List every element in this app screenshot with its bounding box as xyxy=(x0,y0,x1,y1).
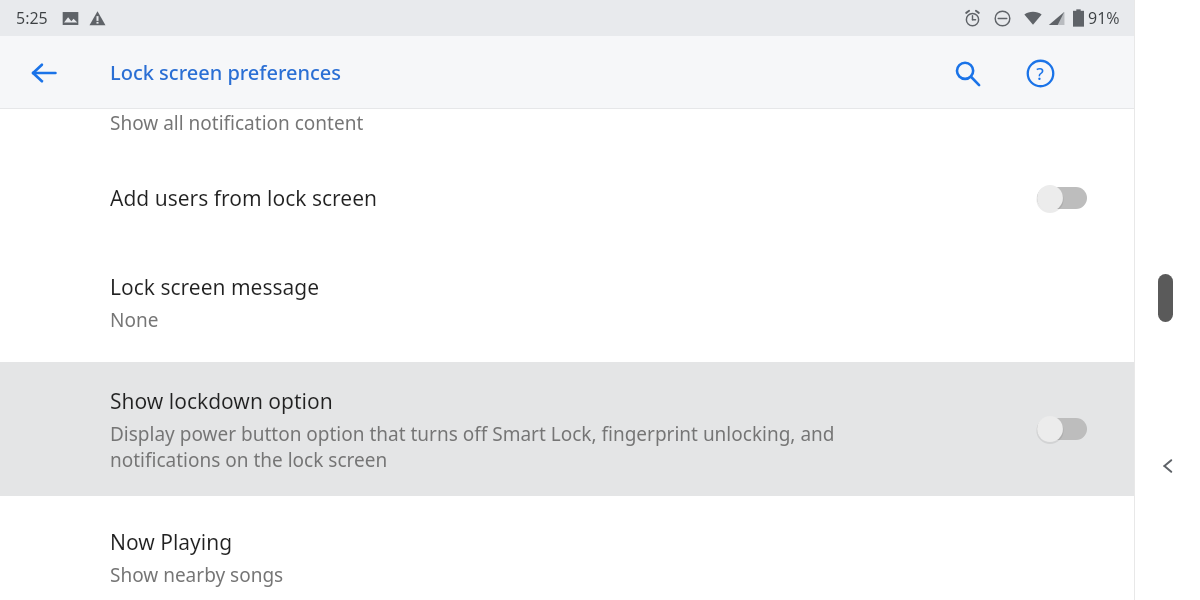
staticText: None xyxy=(110,307,159,333)
staticText: Add users from lock screen xyxy=(110,184,377,213)
staticText: Display power button option that turns o… xyxy=(110,421,934,472)
button[interactable]: Show all notification content xyxy=(0,109,1134,153)
button[interactable]: Toggle xyxy=(1033,181,1087,215)
staticText: Now Playing xyxy=(110,528,233,557)
button[interactable]: Lock screen message xyxy=(0,243,1134,362)
staticText: Show all notification content xyxy=(110,110,364,136)
button[interactable]: Search xyxy=(943,49,991,97)
button[interactable]: Lock screen preferences xyxy=(110,59,342,86)
staticText: 5:25 xyxy=(16,7,48,29)
button[interactable]: Show lockdown option xyxy=(0,362,1134,496)
button[interactable]: Help xyxy=(1016,49,1064,97)
button[interactable]: Toggle xyxy=(1033,412,1087,446)
staticText: 91% xyxy=(1088,7,1120,29)
button[interactable]: Back xyxy=(20,49,68,97)
staticText: Show nearby songs xyxy=(110,562,284,588)
button[interactable]: Now Playing xyxy=(0,496,1134,600)
staticText: ? xyxy=(1036,62,1044,85)
staticText: Lock screen message xyxy=(110,273,320,302)
staticText: Lock screen preferences xyxy=(110,59,342,86)
staticText: Show lockdown option xyxy=(110,387,333,416)
button[interactable]: Collapse xyxy=(1152,450,1184,482)
button[interactable]: Add users from lock screen xyxy=(0,153,1134,243)
